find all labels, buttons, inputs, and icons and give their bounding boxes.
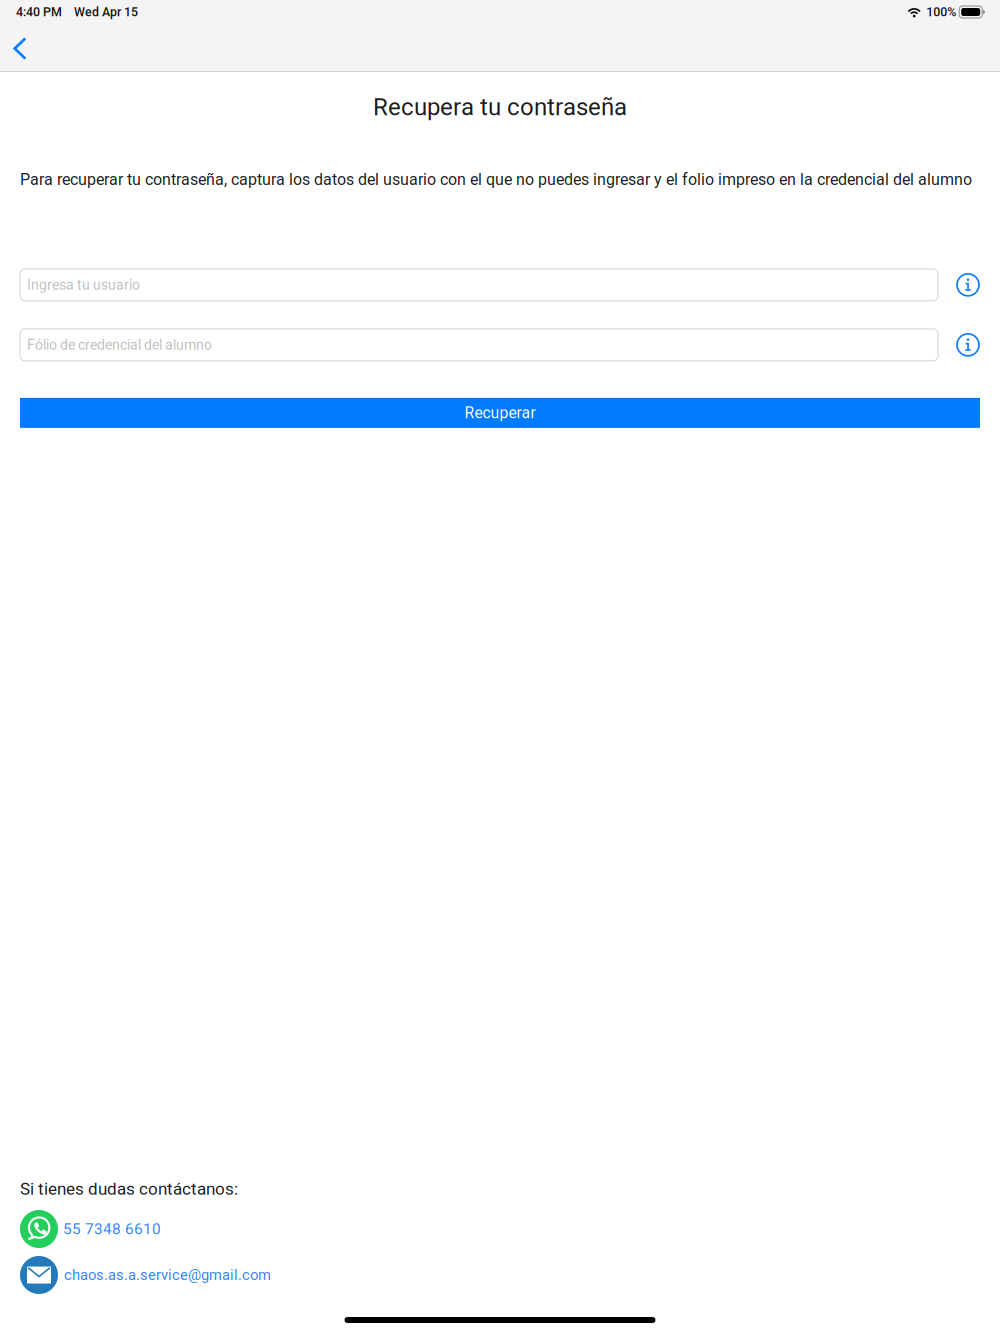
staticText: Recupera tu contraseña: [373, 93, 627, 121]
staticText: Fólio de credencial del alumno: [27, 337, 212, 353]
staticText: Wed Apr 15: [74, 5, 138, 19]
staticText: Si tienes dudas contáctanos:: [20, 1179, 238, 1199]
button[interactable]: Recuperar: [20, 398, 980, 428]
staticText: 55 7348 6610: [63, 1220, 161, 1238]
staticText: Para recuperar tu contraseña, captura lo…: [20, 170, 972, 189]
staticText: 100%: [926, 5, 956, 19]
staticText: 4:40 PM: [16, 5, 62, 19]
staticText: Ingresa tu usuario: [27, 277, 140, 293]
button[interactable]: Más información: [952, 329, 984, 361]
button[interactable]: 55 7348 6610: [20, 1210, 161, 1248]
button[interactable]: Atrás: [3, 25, 37, 65]
staticText: chaos.as.a.service@gmail.com: [64, 1266, 271, 1284]
button[interactable]: chaos.as.a.service@gmail.com: [20, 1256, 271, 1294]
button[interactable]: Más información: [952, 269, 984, 301]
staticText: Recuperar: [464, 404, 535, 422]
